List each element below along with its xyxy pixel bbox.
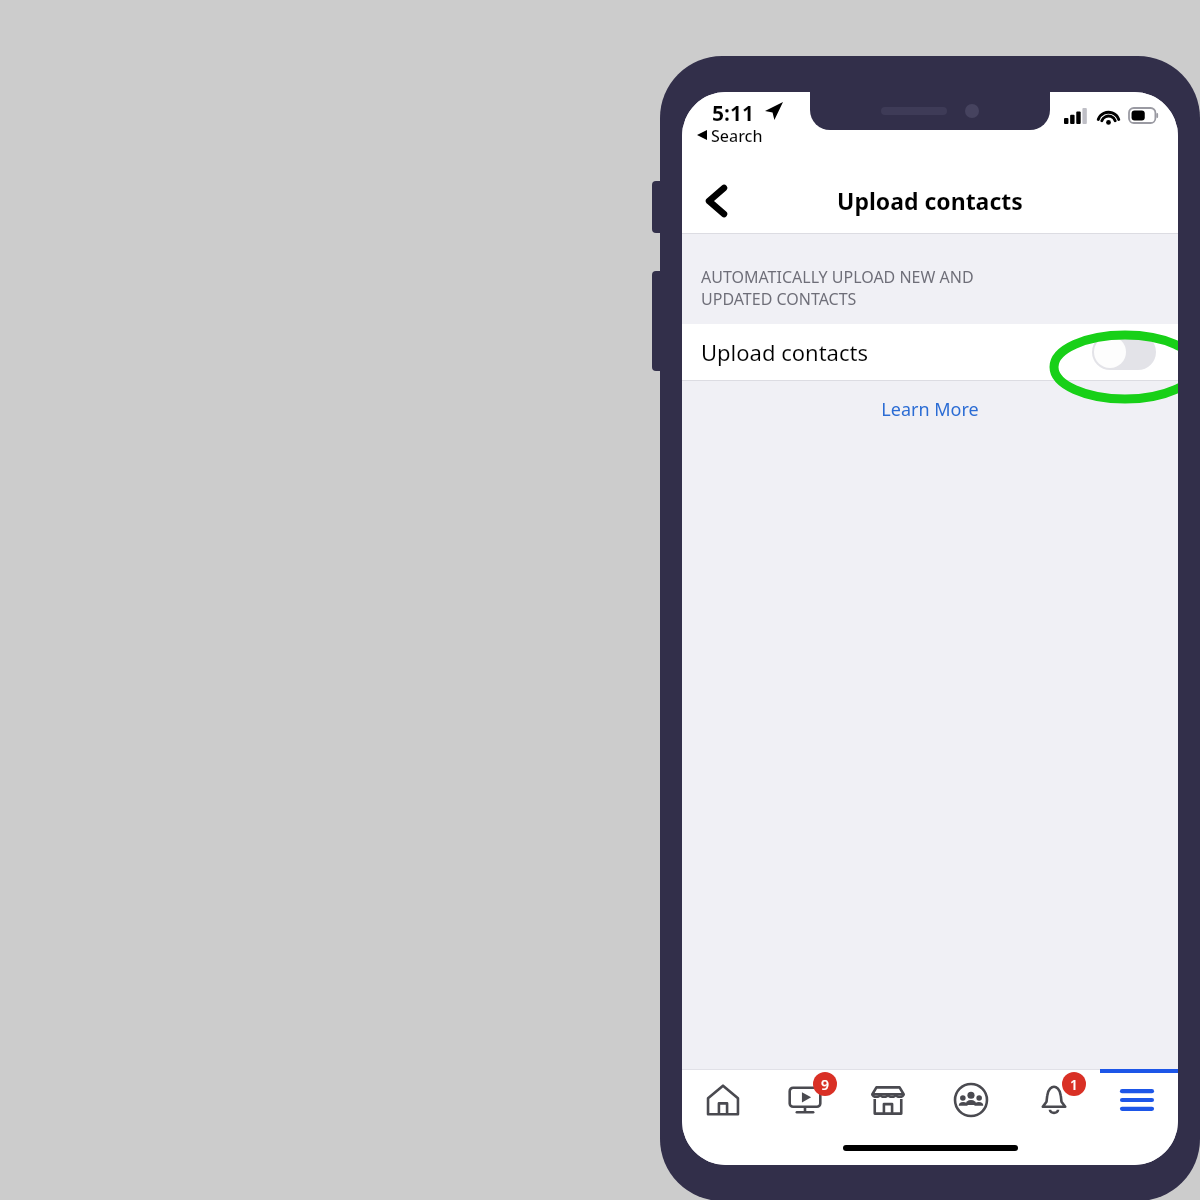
button[interactable]: Watch (764, 1069, 846, 1131)
button[interactable]: Back (688, 173, 744, 229)
button[interactable]: Upload contacts (682, 324, 1178, 380)
button[interactable]: Upload contacts toggle (1092, 334, 1156, 370)
staticText: Search (711, 125, 763, 147)
staticText: 9 (821, 1075, 830, 1094)
button[interactable]: Menu (1095, 1069, 1178, 1131)
staticText: Upload contacts (837, 185, 1023, 216)
staticText: 5:11 (712, 99, 754, 128)
staticText: Upload contacts (701, 337, 868, 367)
button[interactable]: Learn More (873, 393, 987, 426)
staticText: 1 (1070, 1075, 1079, 1094)
button[interactable]: Home (682, 1069, 764, 1131)
button[interactable]: Marketplace (846, 1069, 929, 1131)
button[interactable]: Groups (929, 1069, 1012, 1131)
button[interactable]: Notifications (1012, 1069, 1095, 1131)
staticText: AUTOMATICALLY UPLOAD NEW AND UPDATED CON… (701, 266, 974, 310)
